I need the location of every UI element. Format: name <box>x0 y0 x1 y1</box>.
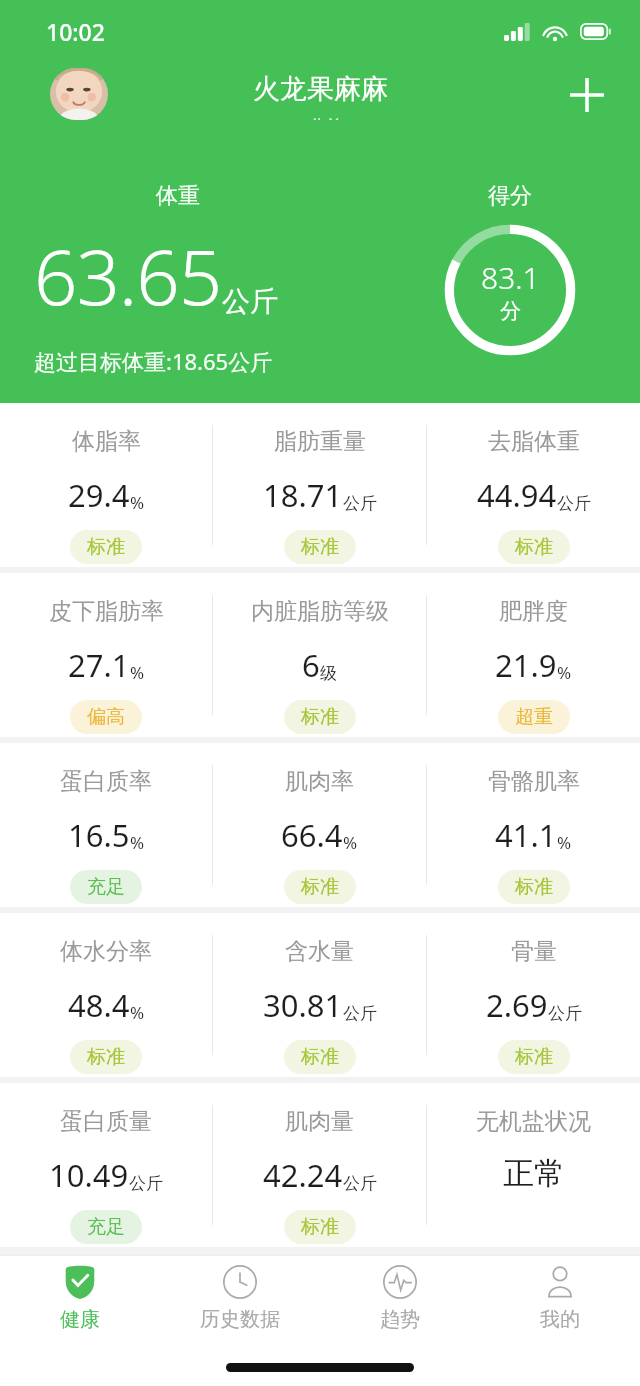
button[interactable]: 趋势 <box>320 1256 480 1348</box>
staticText: 得分 <box>488 182 532 210</box>
staticText: 标准 <box>301 705 339 729</box>
button[interactable]: 蛋白质量 <box>0 1083 212 1247</box>
button[interactable]: 骨骼肌率 <box>427 743 640 907</box>
staticText: 18.71 <box>263 474 343 516</box>
button[interactable]: 脂肪重量 <box>213 403 426 567</box>
staticText: 含水量 <box>285 937 354 966</box>
button[interactable]: 皮下脂肪率 <box>0 573 212 737</box>
staticText: 标准 <box>87 1045 125 1069</box>
staticText: 脂肪重量 <box>274 427 366 456</box>
button[interactable]: 健康 <box>0 1256 160 1348</box>
button[interactable]: 骨量 <box>427 913 640 1077</box>
staticText: % <box>130 1001 145 1024</box>
staticText: 骨骼肌率 <box>488 767 580 796</box>
button[interactable]: Profile avatar <box>50 68 108 120</box>
button[interactable]: 无机盐状况 <box>427 1083 640 1247</box>
button[interactable]: 体水分率 <box>0 913 212 1077</box>
staticText: 超重 <box>515 705 553 729</box>
staticText: 44.94 <box>477 474 557 516</box>
button[interactable]: 肌肉率 <box>213 743 426 907</box>
button[interactable]: 内脏脂肪等级 <box>213 573 426 737</box>
staticText: 2.69 <box>486 984 548 1026</box>
staticText: 充足 <box>87 875 125 899</box>
staticText: 16.5 <box>68 814 130 856</box>
staticText: 体水分率 <box>60 937 152 966</box>
staticText: 蛋白质量 <box>60 1107 152 1136</box>
staticText: 公斤 <box>129 1173 163 1194</box>
staticText: 公斤 <box>343 1003 377 1024</box>
staticText: 41.1 <box>495 814 557 856</box>
staticText: 标准 <box>515 535 553 559</box>
button[interactable]: 历史数据 <box>160 1256 320 1348</box>
button[interactable]: 我的 <box>480 1256 640 1348</box>
staticText: 30.81 <box>263 984 343 1026</box>
staticText: 去脂体重 <box>488 427 580 456</box>
staticText: 超过目标体重:18.65公斤 <box>34 346 273 376</box>
staticText: 10.49 <box>49 1154 129 1196</box>
staticText: 标准 <box>301 1045 339 1069</box>
staticText: 8分前 <box>299 114 343 120</box>
staticText: 48.4 <box>68 984 130 1026</box>
staticText: 66.4 <box>281 814 343 856</box>
staticText: 火龙果麻麻 <box>253 72 388 106</box>
staticText: 蛋白质率 <box>60 767 152 796</box>
staticText: 标准 <box>301 1215 339 1239</box>
staticText: 历史数据 <box>200 1307 280 1332</box>
button[interactable]: 体脂率 <box>0 403 212 567</box>
staticText: 63.65 <box>34 224 222 328</box>
button[interactable]: Add measurement <box>560 70 614 120</box>
staticText: 分 <box>500 298 521 324</box>
staticText: 正常 <box>503 1154 565 1193</box>
staticText: % <box>130 661 145 684</box>
button[interactable]: 肥胖度 <box>427 573 640 737</box>
staticText: 体重 <box>156 182 200 210</box>
staticText: 标准 <box>515 875 553 899</box>
staticText: 皮下脂肪率 <box>49 597 164 626</box>
staticText: 42.24 <box>263 1154 343 1196</box>
button[interactable]: 蛋白质率 <box>0 743 212 907</box>
staticText: 骨量 <box>511 937 557 966</box>
staticText: 无机盐状况 <box>476 1107 591 1136</box>
staticText: 充足 <box>87 1215 125 1239</box>
staticText: 偏高 <box>87 705 125 729</box>
staticText: % <box>343 831 358 854</box>
staticText: % <box>557 661 572 684</box>
staticText: 21.9 <box>495 644 557 686</box>
staticText: % <box>130 831 145 854</box>
staticText: 级 <box>320 663 337 684</box>
staticText: 29.4 <box>68 474 130 516</box>
staticText: 肌肉率 <box>285 767 354 796</box>
staticText: 肌肉量 <box>285 1107 354 1136</box>
button[interactable]: 含水量 <box>213 913 426 1077</box>
staticText: 公斤 <box>343 1173 377 1194</box>
staticText: 标准 <box>87 535 125 559</box>
staticText: 公斤 <box>557 493 591 514</box>
staticText: 标准 <box>301 535 339 559</box>
staticText: 6 <box>302 644 320 686</box>
staticText: 我的 <box>540 1307 580 1332</box>
staticText: 83.1 <box>481 257 540 298</box>
staticText: 27.1 <box>68 644 130 686</box>
staticText: 体脂率 <box>72 427 141 456</box>
button[interactable]: Health score 83.1 <box>442 222 578 358</box>
staticText: 公斤 <box>548 1003 582 1024</box>
staticText: 10:02 <box>46 16 105 47</box>
staticText: 标准 <box>301 875 339 899</box>
staticText: 健康 <box>60 1307 100 1332</box>
staticText: 公斤 <box>343 493 377 514</box>
staticText: % <box>557 831 572 854</box>
button[interactable]: 去脂体重 <box>427 403 640 567</box>
staticText: 肥胖度 <box>499 597 568 626</box>
staticText: 公斤 <box>222 284 278 319</box>
staticText: 标准 <box>515 1045 553 1069</box>
staticText: % <box>130 491 145 514</box>
button[interactable]: 肌肉量 <box>213 1083 426 1247</box>
staticText: 内脏脂肪等级 <box>251 597 389 626</box>
staticText: 趋势 <box>380 1307 420 1332</box>
